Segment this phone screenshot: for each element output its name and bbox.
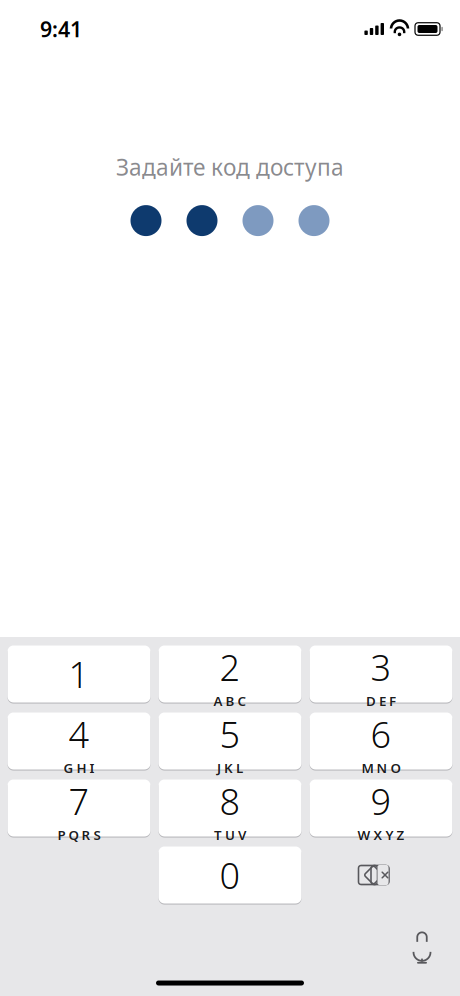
staticText: 6 bbox=[370, 710, 391, 758]
staticText: 4 bbox=[68, 710, 89, 758]
staticText: Задайте код доступа bbox=[116, 152, 344, 182]
staticText: 0 bbox=[219, 851, 240, 899]
staticText: 3 bbox=[370, 643, 391, 691]
button[interactable]: 7 bbox=[7, 779, 150, 837]
staticText: 8 bbox=[219, 777, 240, 825]
staticText: 5 bbox=[219, 710, 240, 758]
staticText: A B C bbox=[213, 692, 246, 710]
button[interactable]: 0 bbox=[158, 846, 301, 904]
staticText: 2 bbox=[219, 643, 240, 691]
button[interactable]: 4 bbox=[7, 712, 150, 770]
button[interactable]: Dictate bbox=[400, 926, 444, 970]
staticText: M N O bbox=[361, 759, 400, 777]
staticText: W X Y Z bbox=[357, 826, 404, 844]
staticText: D E F bbox=[366, 692, 396, 710]
staticText: 9:41 bbox=[40, 15, 82, 43]
button[interactable]: 6 bbox=[309, 712, 452, 770]
button[interactable]: 8 bbox=[158, 779, 301, 837]
staticText: G H I bbox=[63, 759, 94, 777]
button[interactable]: 5 bbox=[158, 712, 301, 770]
button[interactable]: 3 bbox=[309, 645, 452, 703]
staticText: 1 bbox=[68, 650, 89, 698]
button[interactable]: 9 bbox=[309, 779, 452, 837]
staticText: 7 bbox=[68, 777, 89, 825]
staticText: 9 bbox=[370, 777, 391, 825]
button[interactable]: 2 bbox=[158, 645, 301, 703]
staticText: J K L bbox=[217, 759, 243, 777]
staticText: T U V bbox=[214, 826, 246, 844]
button[interactable]: Delete bbox=[309, 846, 452, 904]
staticText: P Q R S bbox=[57, 826, 100, 844]
button[interactable]: 1 bbox=[7, 645, 150, 703]
